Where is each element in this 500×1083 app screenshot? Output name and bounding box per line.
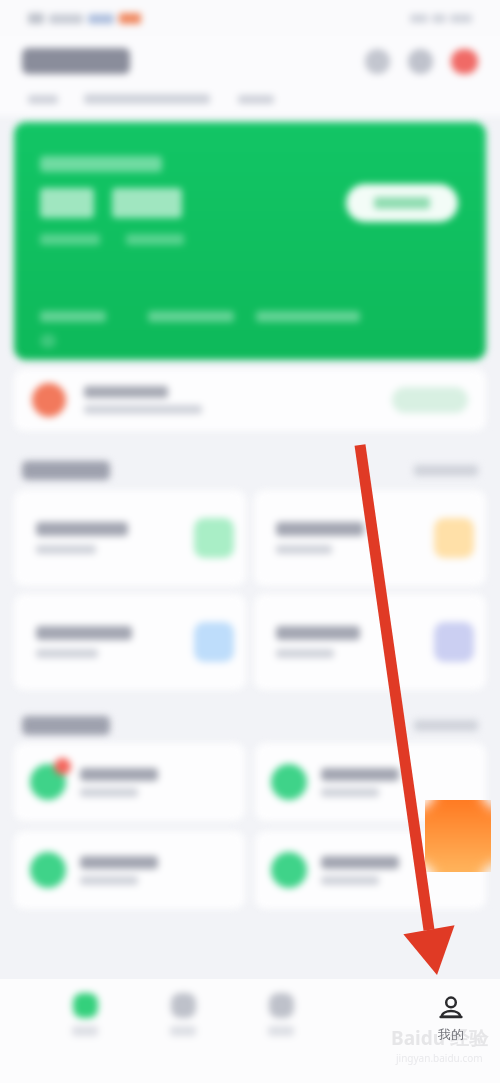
button[interactable] [256,311,360,322]
button[interactable] [414,720,478,731]
button[interactable] [255,743,486,821]
button[interactable] [346,184,458,222]
button[interactable] [14,594,246,690]
button[interactable] [392,387,468,413]
button[interactable] [14,490,246,586]
button[interactable] [14,122,486,360]
button[interactable] [14,743,245,821]
button[interactable] [255,831,486,909]
button[interactable] [254,594,486,690]
button[interactable]: 客服 [408,49,433,74]
button[interactable]: 活动入口 [425,800,491,872]
button[interactable]: 我的 [428,993,474,1044]
staticText: jingyan.baidu.com [396,1051,483,1065]
button[interactable] [414,465,478,476]
button[interactable]: 消息 [451,49,478,74]
button[interactable] [254,490,486,586]
staticText: 我的 [438,1026,464,1042]
staticText: Baidu 经验 [391,1025,488,1051]
button[interactable]: 扫一扫 [365,49,390,74]
button[interactable] [14,369,486,431]
button[interactable] [148,311,234,322]
button[interactable] [14,831,245,909]
button[interactable] [40,311,106,322]
